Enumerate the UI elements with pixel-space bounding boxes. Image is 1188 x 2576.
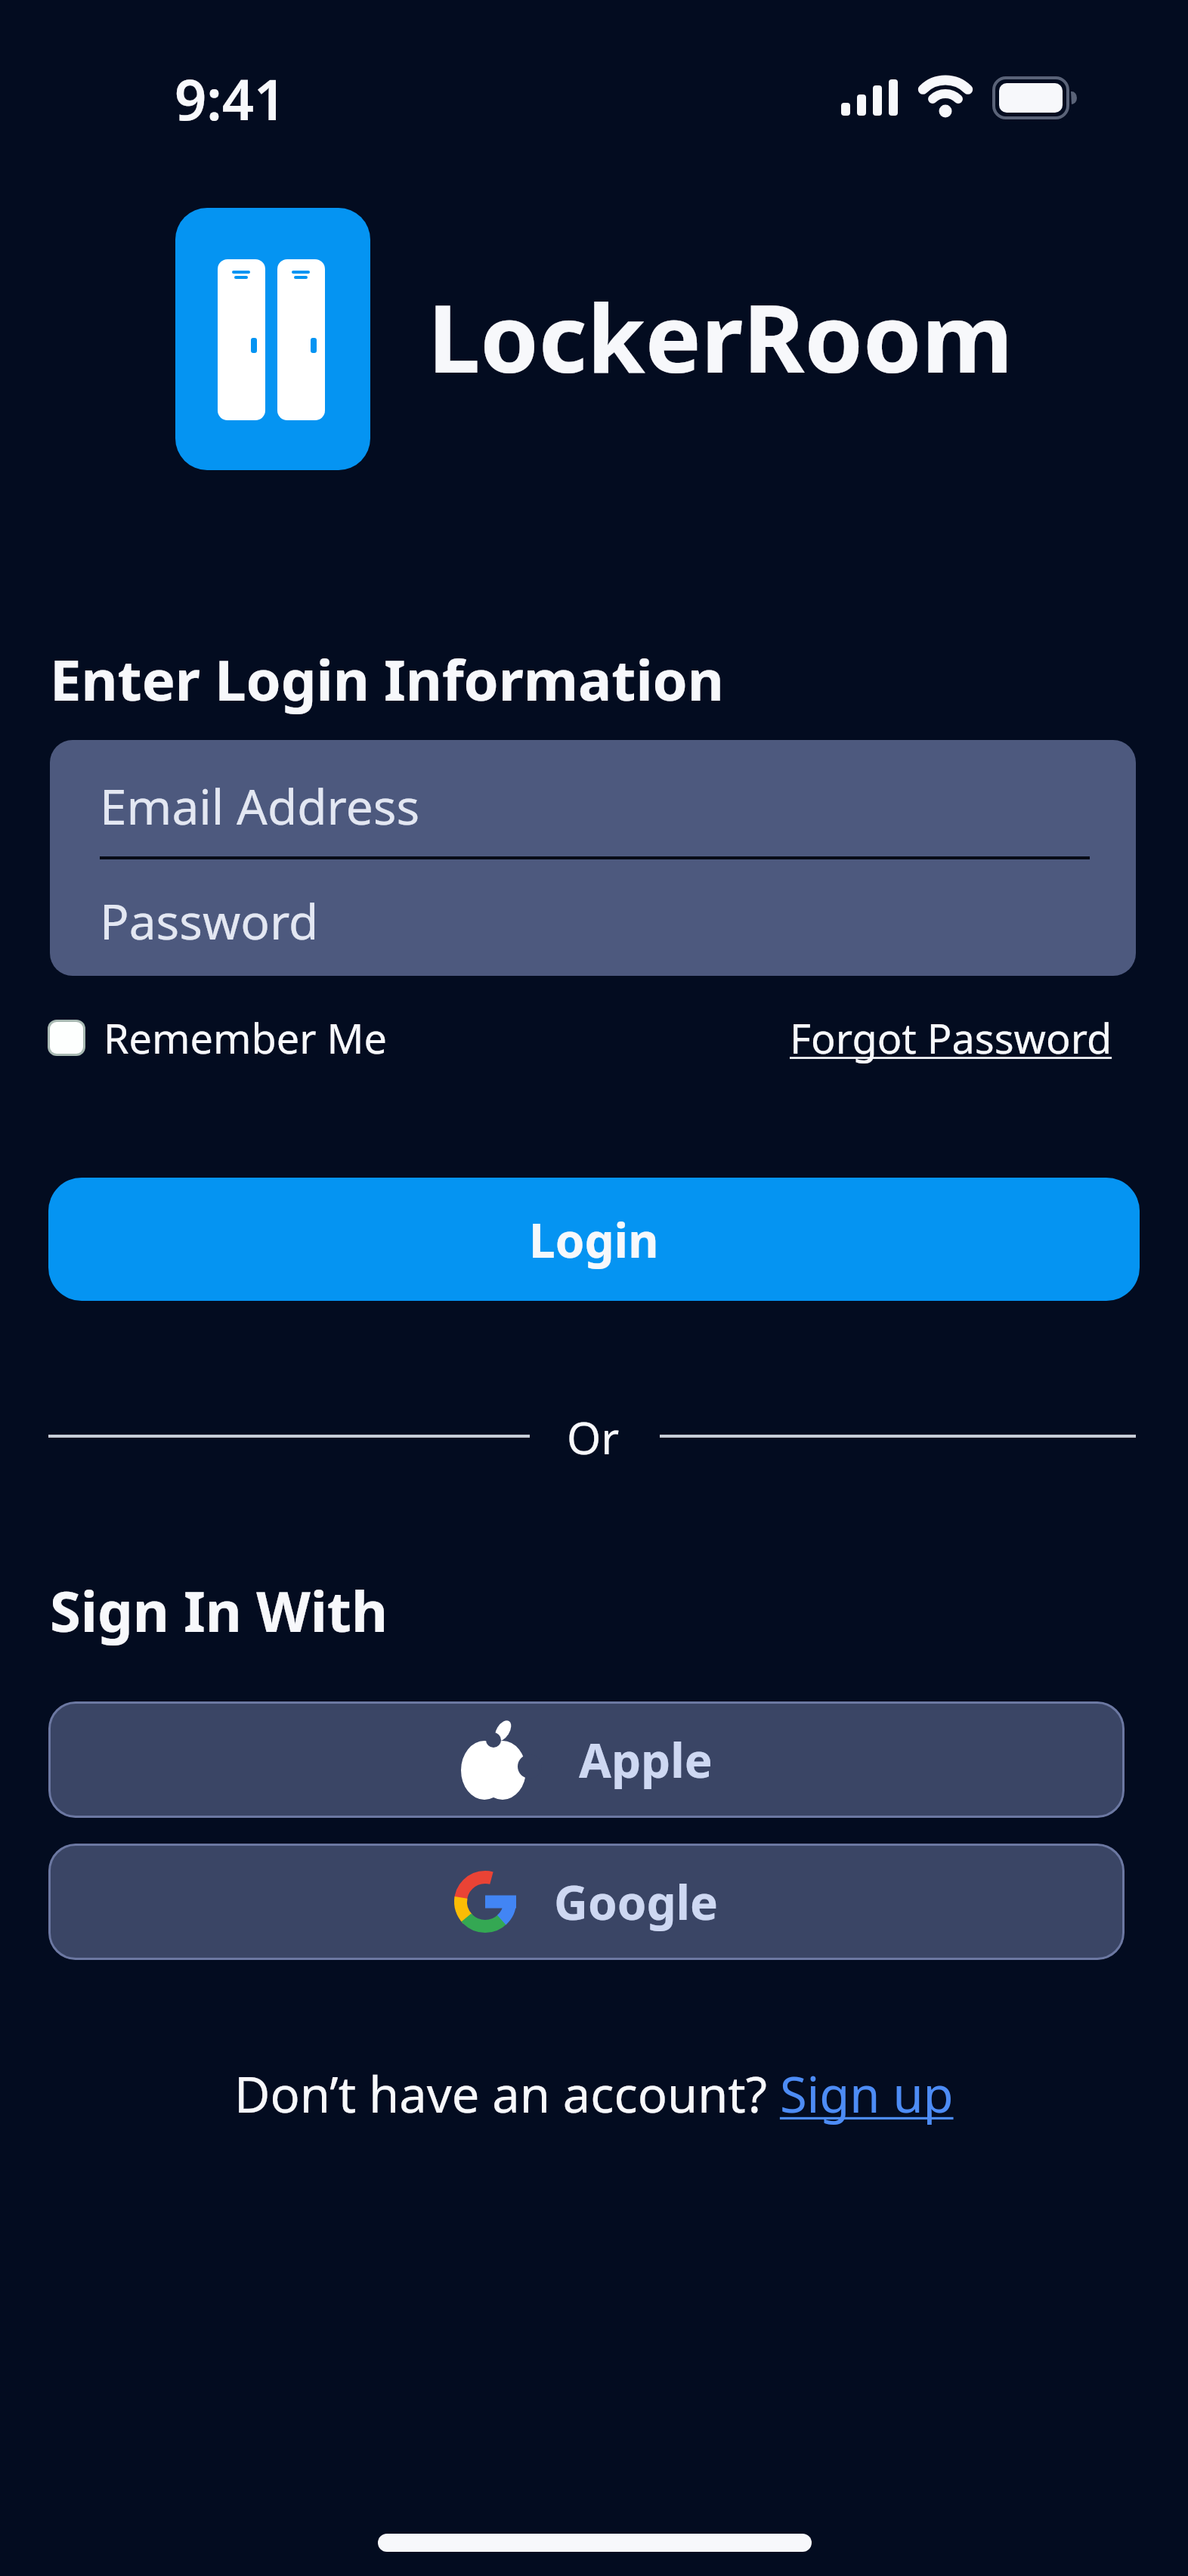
- staticText: LockerRoom: [428, 272, 1013, 400]
- button[interactable]: Remember Me: [48, 1010, 387, 1066]
- button[interactable]: Google: [48, 1844, 1125, 1960]
- staticText: Enter Login Information: [50, 641, 724, 717]
- button[interactable]: Forgot Password: [790, 1010, 1112, 1066]
- staticText: Or: [567, 1407, 620, 1467]
- staticText: Sign In With: [50, 1572, 388, 1649]
- staticText: Apple: [579, 1728, 713, 1791]
- staticText: 9:41: [175, 60, 286, 137]
- staticText: Remember Me: [104, 1010, 387, 1066]
- staticText: Password: [100, 888, 319, 954]
- staticText: Email Address: [100, 773, 420, 839]
- button[interactable]: Apple: [48, 1701, 1125, 1818]
- staticText: Login: [529, 1208, 659, 1271]
- button[interactable]: Login: [48, 1178, 1140, 1301]
- staticText: Google: [554, 1870, 719, 1934]
- button[interactable]: Don’t have an account? Sign up: [234, 2060, 954, 2128]
